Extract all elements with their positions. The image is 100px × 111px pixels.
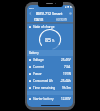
staticText: % [52, 39, 55, 43]
button[interactable]: Power [27, 70, 73, 77]
button[interactable]: Settings [67, 10, 73, 16]
staticText: Current [33, 65, 44, 69]
staticText: HISTORY [56, 18, 68, 22]
staticText: Power [33, 72, 42, 76]
button[interactable]: Voltage [27, 56, 73, 63]
button[interactable]: Back [27, 10, 33, 16]
button[interactable]: Starter battery [27, 95, 73, 102]
staticText: 12.80V [61, 97, 71, 101]
staticText: -25.4Ah [60, 79, 71, 83]
button[interactable]: Current [27, 63, 73, 70]
staticText: 25.46V [61, 58, 71, 62]
staticText: STATUS [34, 18, 44, 22]
staticText: Battery [29, 51, 39, 55]
button[interactable]: HISTORY [50, 17, 73, 22]
staticText: Consumed Ah [33, 79, 53, 83]
button[interactable]: Consumed Ah [27, 77, 73, 84]
button[interactable]: STATUS [27, 17, 50, 22]
staticText: Voltage [33, 58, 44, 62]
staticText: 9h 3m [62, 86, 71, 90]
staticText: 191W [63, 72, 71, 76]
staticText: Starter battery [33, 97, 54, 101]
button[interactable]: Time remaining [27, 84, 73, 91]
staticText: 7.5A [64, 65, 71, 69]
staticText: 9:41 [29, 6, 34, 9]
staticText: State of charge [33, 25, 55, 29]
staticText: Time remaining [33, 86, 56, 90]
staticText: 85 [45, 36, 52, 43]
staticText: BMV-712 Smart [36, 11, 63, 16]
